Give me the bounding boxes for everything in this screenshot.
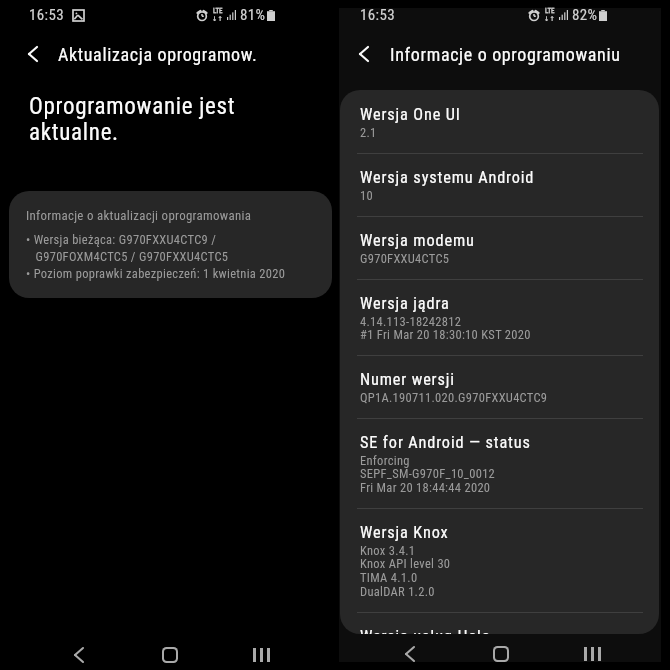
staticText: Informacje o oprogramowaniu [390, 44, 621, 65]
staticText: Wersja usług Halo [360, 627, 491, 634]
staticText: Informacje o aktualizacji oprogramowania [26, 208, 252, 223]
staticText: Oprogramowanie jest aktualne. [29, 93, 236, 146]
staticText: Numer wersji [360, 370, 455, 389]
button[interactable]: Wersja Knox [340, 509, 659, 612]
staticText: LTE [545, 7, 555, 15]
staticText: 82% [572, 6, 598, 24]
staticText: 16:53 [360, 6, 396, 24]
staticText: 81% [240, 6, 266, 24]
button[interactable]: Wersja usług Halo [340, 613, 659, 634]
button[interactable]: Wersja modemu [340, 217, 659, 279]
staticText: • Wersja bieżąca: G970FXXU4CTC9 / G970FO… [26, 232, 286, 281]
button[interactable]: SE for Android — status [340, 419, 659, 508]
button[interactable]: Wersja jądra [340, 280, 659, 355]
staticText: LTE [213, 7, 223, 15]
staticText: G970FXXU4CTC5 [360, 251, 450, 266]
button[interactable]: Wersja One UI [340, 91, 659, 153]
staticText: QP1A.190711.020.G970FXXU4CTC9 [360, 390, 548, 405]
staticText: Wersja One UI [360, 105, 461, 124]
button[interactable]: Informacje o aktualizacji oprogramowania [9, 191, 332, 298]
button[interactable]: Recent apps [572, 641, 612, 667]
staticText: SE for Android — status [360, 433, 531, 452]
staticText: Wersja Knox [360, 523, 449, 542]
button[interactable]: Back [390, 641, 430, 667]
button[interactable]: Back [59, 642, 99, 668]
staticText: ↓↑ [212, 15, 223, 23]
staticText: Enforcing SEPF_SM-G970F_10_0012 Fri Mar … [360, 453, 496, 495]
button[interactable]: Back [339, 40, 661, 68]
staticText: 10 [360, 188, 373, 203]
button[interactable]: Wersja systemu Android [340, 154, 659, 216]
staticText: Wersja jądra [360, 294, 450, 313]
button[interactable]: Back [0, 40, 339, 68]
other: Back [360, 47, 368, 61]
staticText: Knox 3.4.1 Knox API level 30 TIMA 4.1.0 … [360, 543, 451, 599]
staticText: Aktualizacja oprogramow. [58, 44, 258, 65]
staticText: 2.1 [360, 125, 377, 140]
staticText: 16:53 [29, 6, 65, 24]
staticText: Wersja systemu Android [360, 168, 535, 187]
button[interactable]: Home [481, 641, 521, 667]
button[interactable]: Numer wersji [340, 356, 659, 418]
staticText: Wersja modemu [360, 231, 475, 250]
button[interactable]: Home [150, 642, 190, 668]
button[interactable]: Recent apps [241, 642, 281, 668]
staticText: 4.14.113-18242812 #1 Fri Mar 20 18:30:10… [360, 314, 531, 342]
staticText: ↓↑ [544, 15, 555, 23]
other: Back [29, 47, 37, 61]
